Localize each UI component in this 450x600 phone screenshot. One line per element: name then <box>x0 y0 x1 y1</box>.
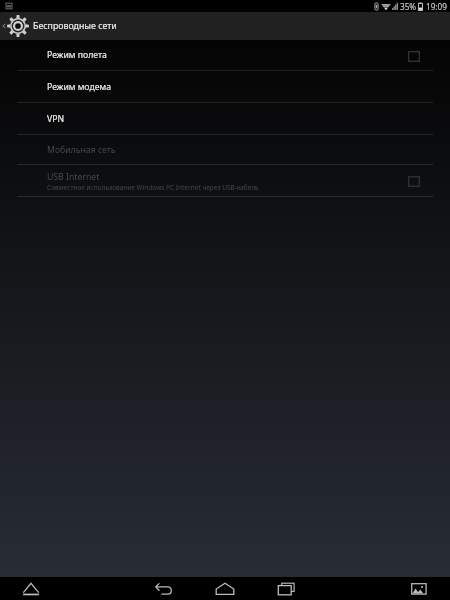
button[interactable]: Мобильная сеть <box>0 134 450 165</box>
button[interactable]: Home <box>202 577 248 600</box>
staticText: Совместное использование Windows PC Inte… <box>47 183 259 192</box>
staticText: Режим модема <box>47 81 112 93</box>
button[interactable]: Recents <box>264 577 310 600</box>
staticText: Режим полета <box>47 49 107 61</box>
staticText: Беспроводные сети <box>33 20 117 32</box>
staticText: USB Internet <box>47 171 100 183</box>
staticText: 35% <box>400 1 417 12</box>
staticText: Мобильная сеть <box>47 144 116 156</box>
button[interactable]: Back <box>141 577 187 600</box>
staticText: VPN <box>47 113 65 125</box>
button[interactable]: Режим полета <box>0 41 450 71</box>
button[interactable]: USB Internet <box>0 165 450 197</box>
staticText: 19:09 <box>426 1 447 12</box>
button[interactable]: Eject <box>8 577 54 600</box>
button[interactable]: Screenshot <box>396 577 442 600</box>
button[interactable]: Режим модема <box>0 71 450 103</box>
button[interactable]: VPN <box>0 103 450 135</box>
button[interactable]: Back <box>0 12 450 40</box>
